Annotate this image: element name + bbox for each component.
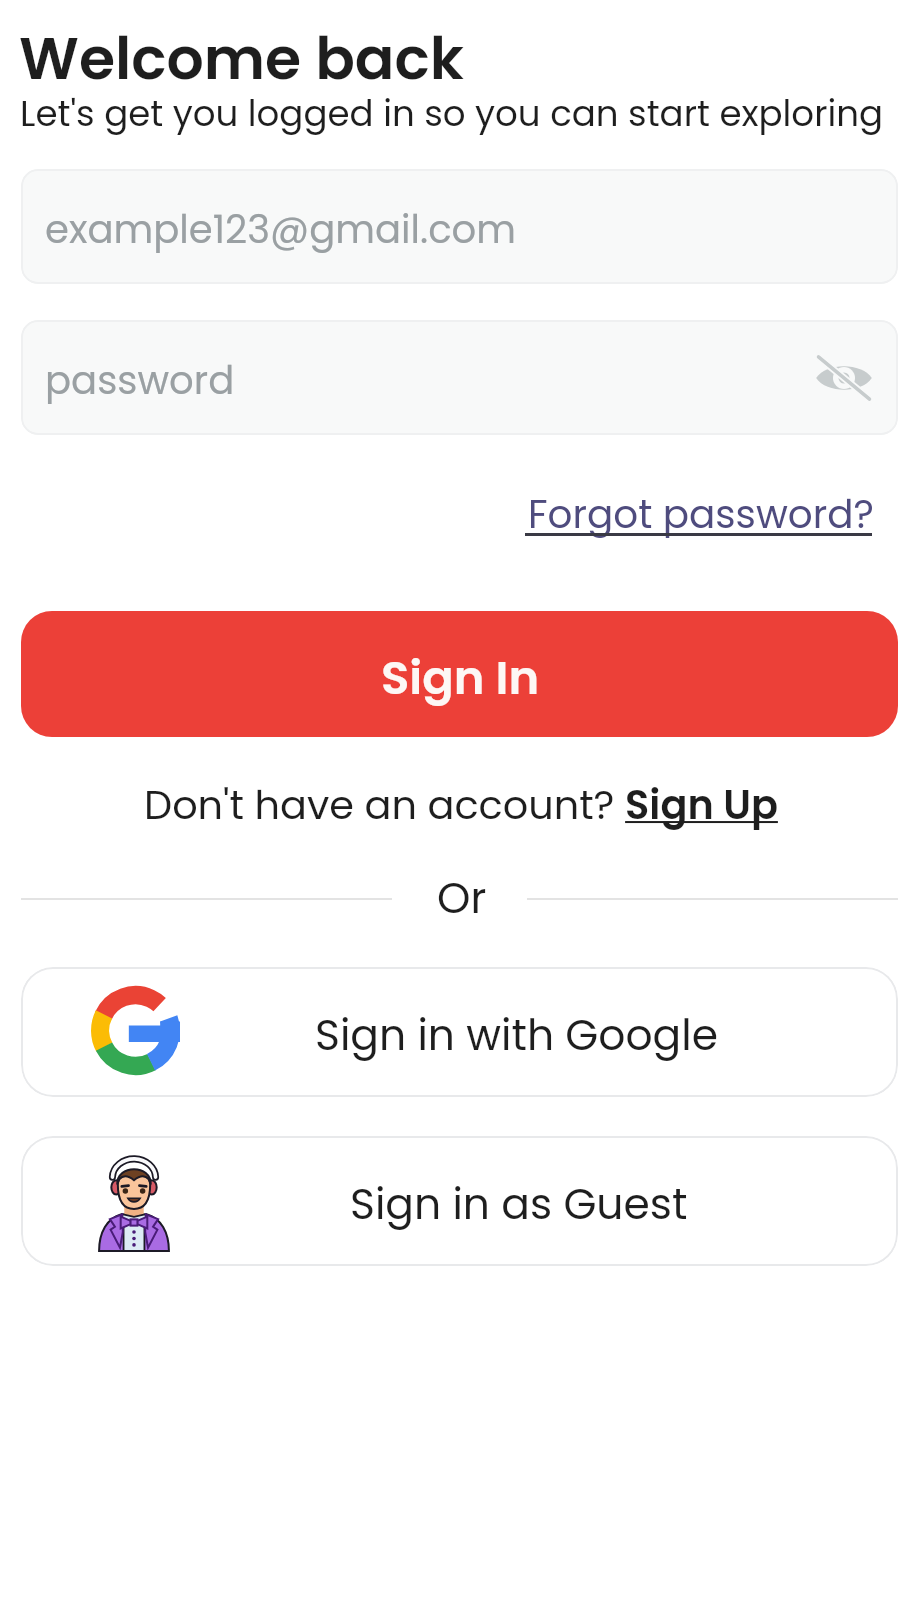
staticText: example123@gmail.com [45, 202, 517, 256]
button[interactable]: Sign in as Guest [21, 1136, 898, 1266]
button[interactable]: password [21, 320, 898, 435]
button[interactable]: Don't have an account? Sign Up [137, 777, 782, 839]
button[interactable]: Forgot password? [520, 483, 878, 545]
button[interactable]: Sign in with Google [21, 967, 898, 1097]
staticText: Sign In [381, 645, 540, 710]
staticText: Forgot password? [528, 487, 874, 541]
staticText: Welcome back [19, 18, 464, 100]
staticText: Sign in with Google [315, 1005, 718, 1064]
staticText: Or [437, 868, 487, 927]
staticText: Sign in as Guest [350, 1174, 688, 1233]
staticText: Don't have an account? Sign Up [144, 777, 778, 833]
staticText: Let's get you logged in so you can start… [20, 89, 884, 139]
staticText: password [45, 353, 235, 407]
button[interactable]: example123@gmail.com [21, 169, 898, 284]
button[interactable]: Sign In [21, 611, 898, 737]
button[interactable]: Show password [815, 355, 873, 401]
